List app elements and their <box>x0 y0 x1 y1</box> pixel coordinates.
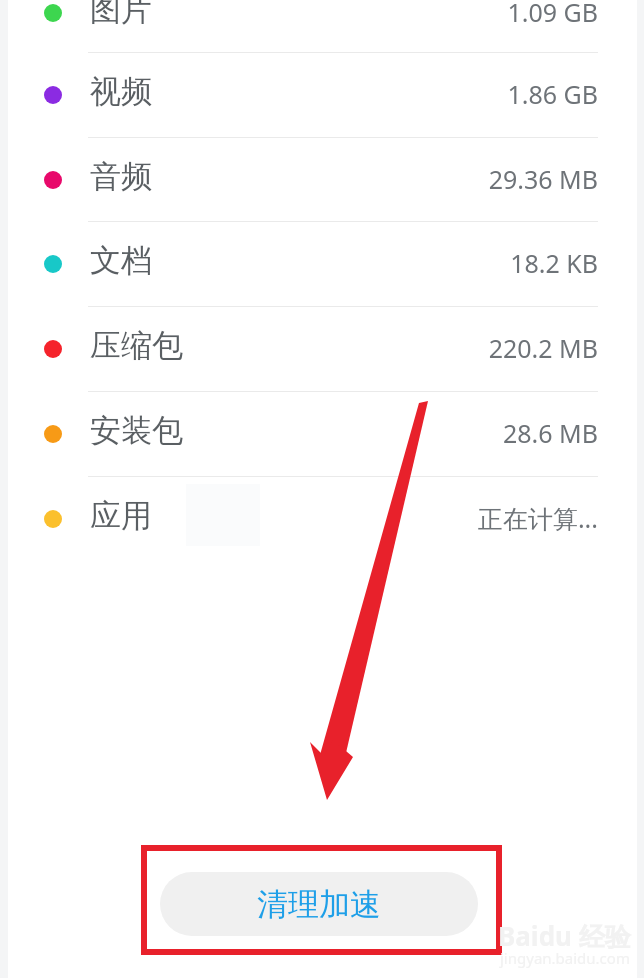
staticText: 音频 <box>90 157 152 196</box>
staticText: 清理加速 <box>257 885 381 924</box>
staticText: 文档 <box>90 241 152 280</box>
button[interactable] <box>8 222 638 306</box>
button[interactable]: 清理加速 <box>160 872 478 936</box>
staticText: 18.2 KB <box>318 246 598 280</box>
staticText: Baidu 经验 <box>498 918 631 954</box>
button[interactable] <box>8 477 638 561</box>
staticText: 安装包 <box>90 411 183 450</box>
staticText: jingyan.baidu.com <box>500 948 630 968</box>
staticText: 220.2 MB <box>318 331 598 365</box>
staticText: 应用 <box>90 496 152 535</box>
button[interactable] <box>8 392 638 476</box>
staticText: 压缩包 <box>90 326 183 365</box>
staticText: 图片 <box>90 0 152 29</box>
button[interactable] <box>8 138 638 222</box>
staticText: 正在计算... <box>318 501 598 535</box>
staticText: 29.36 MB <box>318 162 598 196</box>
staticText: 1.09 GB <box>318 0 598 29</box>
staticText: 28.6 MB <box>318 416 598 450</box>
button[interactable] <box>8 53 638 137</box>
staticText: 视频 <box>90 72 152 111</box>
staticText: 1.86 GB <box>318 77 598 111</box>
button[interactable] <box>8 0 638 55</box>
button[interactable] <box>8 307 638 391</box>
